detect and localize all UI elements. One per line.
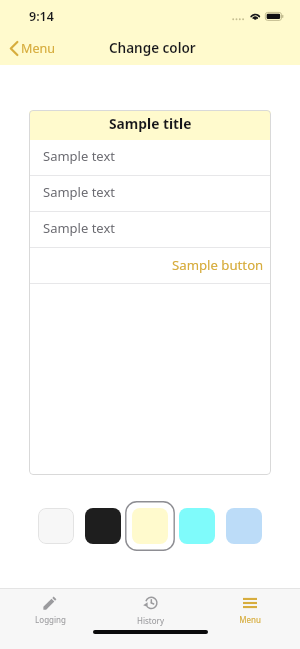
button[interactable]: Choose color 3 bbox=[132, 508, 168, 544]
button[interactable]: Choose color 5 bbox=[226, 508, 262, 544]
button[interactable]: Sample text bbox=[29, 176, 271, 211]
staticText: Sample text bbox=[43, 147, 115, 165]
button[interactable]: History bbox=[100, 589, 200, 626]
staticText: Sample title bbox=[109, 114, 192, 133]
button[interactable]: Choose color 2 bbox=[85, 508, 121, 544]
button[interactable]: Logging bbox=[0, 589, 100, 626]
staticText: Sample text bbox=[43, 219, 115, 237]
button[interactable]: Choose color 1 bbox=[38, 508, 74, 544]
button[interactable]: Choose color 4 bbox=[179, 508, 215, 544]
staticText: Sample text bbox=[43, 183, 115, 201]
staticText: Menu bbox=[239, 614, 261, 625]
button[interactable]: Sample button bbox=[29, 248, 271, 283]
button[interactable]: Sample text bbox=[29, 212, 271, 247]
button[interactable]: Menu bbox=[200, 589, 300, 626]
staticText: Logging bbox=[35, 614, 66, 625]
button[interactable]: Sample text bbox=[29, 140, 271, 175]
staticText: Menu bbox=[21, 40, 56, 57]
staticText: Change color bbox=[109, 39, 196, 57]
staticText: 9:14 bbox=[29, 8, 54, 25]
staticText: Sample button bbox=[172, 256, 264, 274]
button[interactable]: Menu bbox=[0, 36, 66, 61]
staticText: History bbox=[137, 615, 164, 626]
